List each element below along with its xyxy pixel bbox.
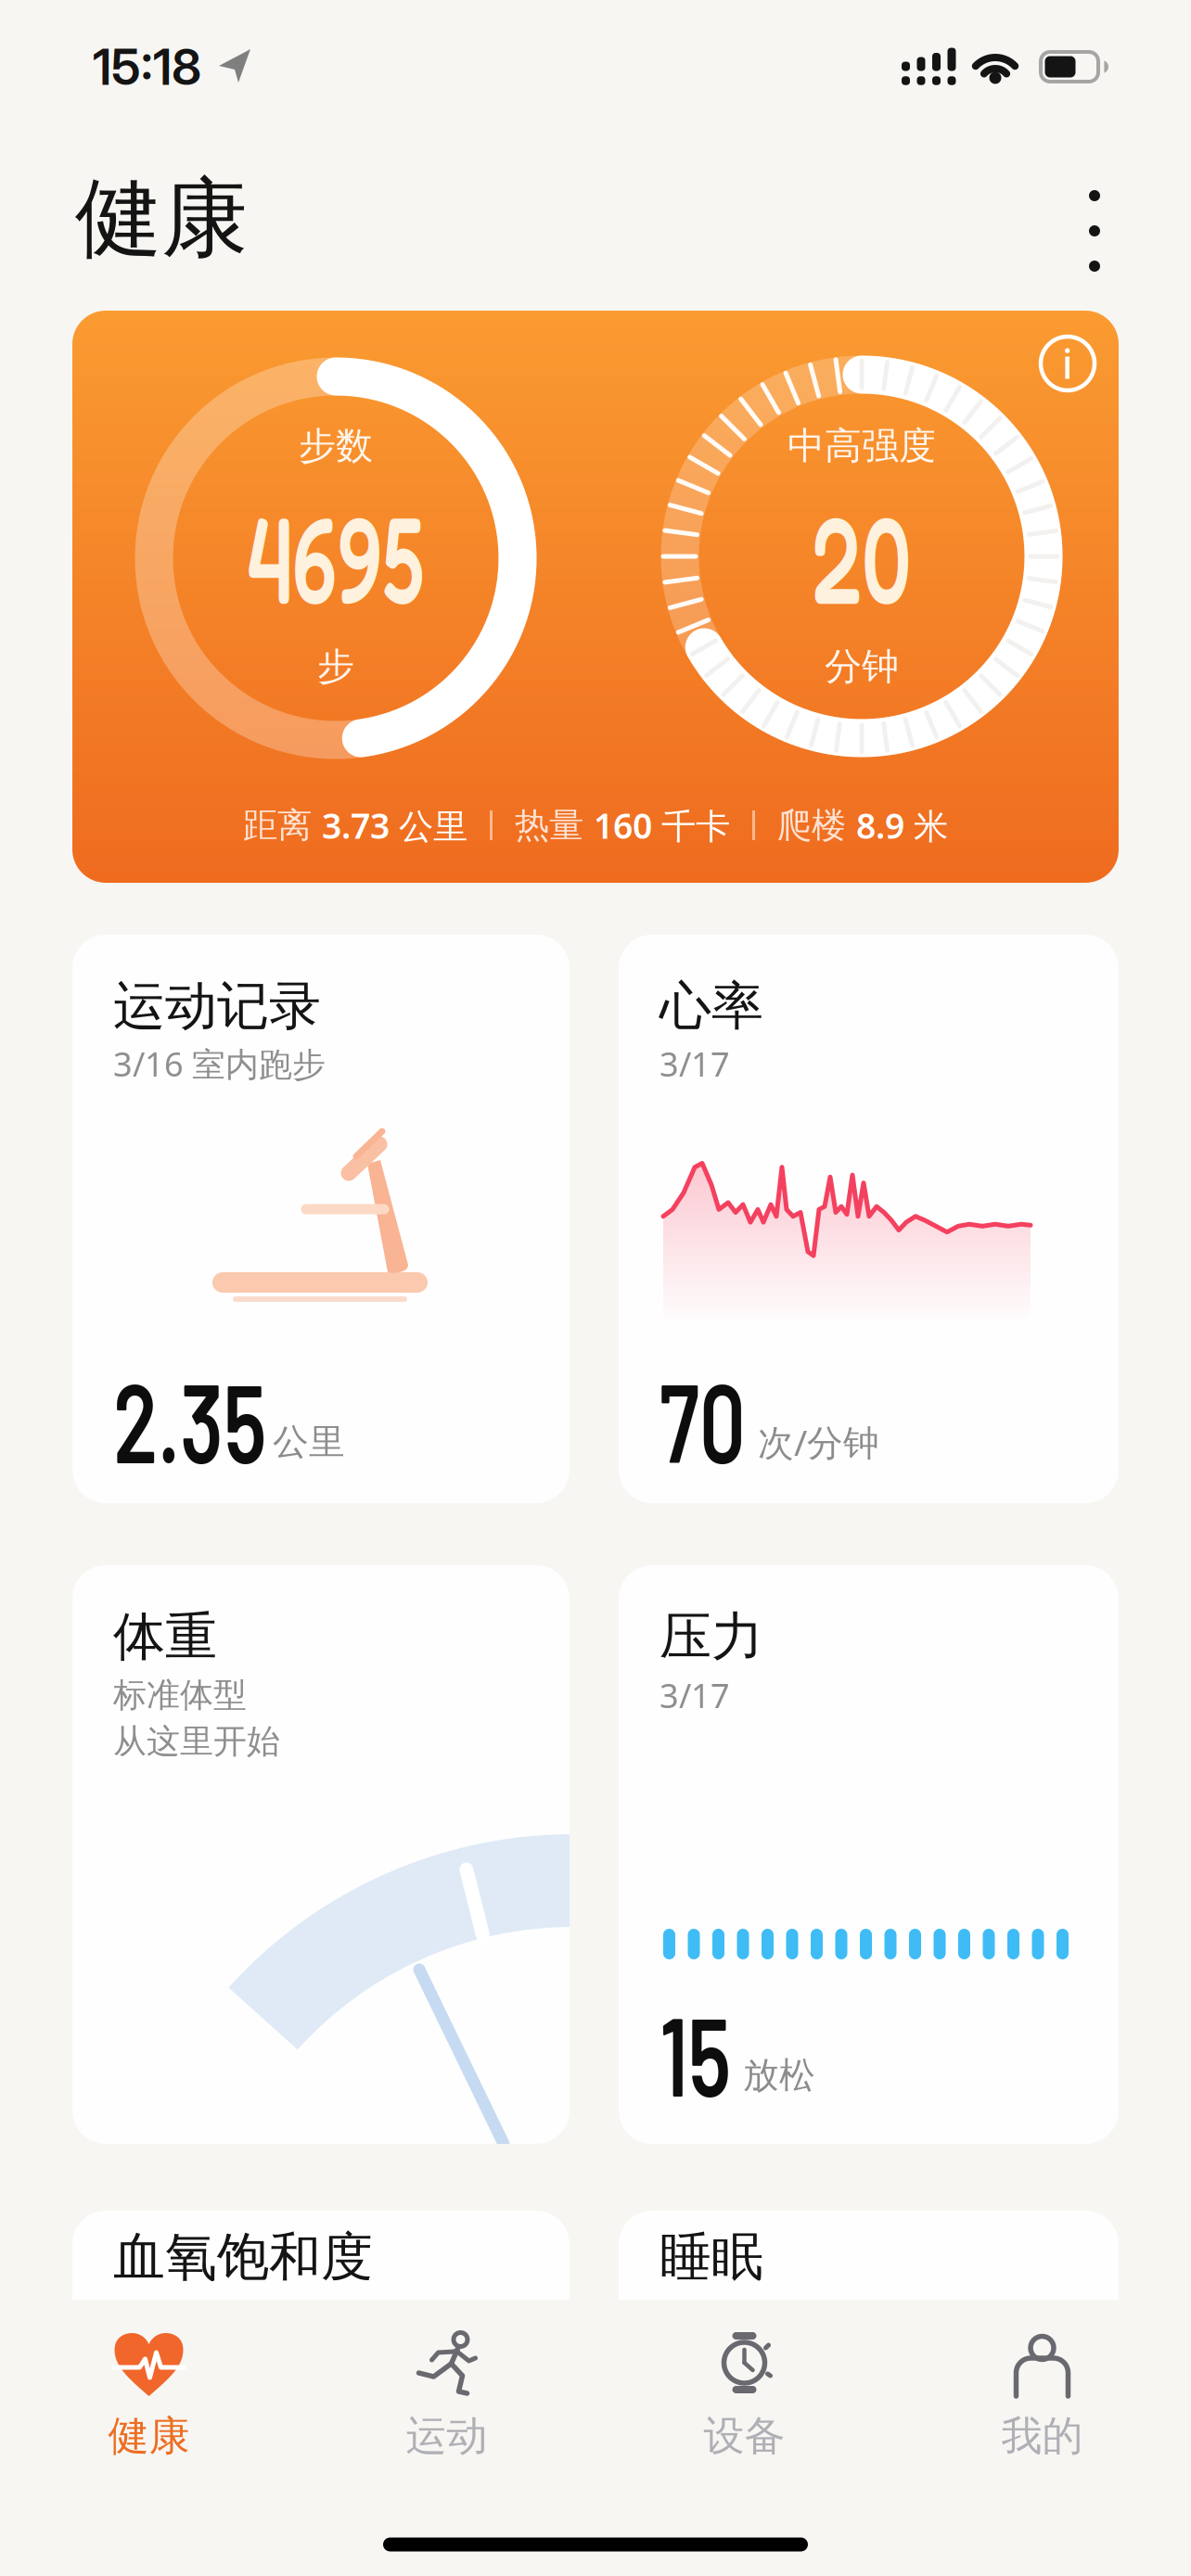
- staticText: 健康: [108, 2411, 190, 2461]
- button[interactable]: 健康: [28, 2300, 269, 2485]
- staticText: 健康: [75, 166, 248, 272]
- staticText: 15: [660, 1985, 758, 2119]
- button[interactable]: 睡眠: [619, 2211, 1119, 2576]
- staticText: 运动: [406, 2411, 487, 2461]
- button[interactable]: 步数: [72, 311, 1119, 883]
- staticText: 3/17: [660, 1673, 730, 1717]
- button[interactable]: 体重: [72, 1565, 570, 2144]
- staticText: 3/17: [660, 1041, 730, 1086]
- staticText: 70: [660, 1352, 777, 1486]
- staticText: 热量: [515, 804, 583, 847]
- staticText: 3/16 室内跑步: [113, 1041, 326, 1086]
- staticText: 步数: [299, 423, 373, 469]
- button[interactable]: 压力: [619, 1565, 1119, 2144]
- staticText: 次/分钟: [758, 1418, 879, 1466]
- staticText: 标准体型: [113, 1675, 247, 1716]
- staticText: 20: [791, 485, 933, 631]
- button[interactable]: 血氧饱和度: [72, 2211, 570, 2576]
- staticText: 放松: [743, 2053, 815, 2097]
- staticText: i: [1062, 337, 1073, 390]
- staticText: 压力: [660, 1605, 763, 1669]
- button[interactable]: 更多: [1057, 166, 1132, 296]
- button[interactable]: 活动数据说明: [1039, 335, 1096, 392]
- staticText: 心率: [660, 974, 763, 1038]
- staticText: 血氧饱和度: [113, 2225, 373, 2289]
- staticText: 爬楼: [777, 804, 846, 847]
- staticText: 运动记录: [113, 974, 321, 1038]
- button[interactable]: 我的: [922, 2300, 1163, 2485]
- staticText: 我的: [1001, 2411, 1083, 2461]
- staticText: 距离: [243, 804, 312, 847]
- staticText: 从这里开始: [113, 1721, 280, 1762]
- staticText: 公里: [273, 1420, 345, 1464]
- staticText: 2.35: [113, 1352, 324, 1486]
- staticText: 体重: [113, 1605, 217, 1669]
- staticText: 设备: [704, 2411, 785, 2461]
- button[interactable]: 心率: [619, 935, 1119, 1503]
- button[interactable]: 运动: [326, 2300, 567, 2485]
- staticText: 睡眠: [660, 2225, 763, 2289]
- staticText: 4695: [208, 485, 464, 631]
- staticText: 15:18: [93, 37, 201, 97]
- staticText: 3.73 公里: [322, 802, 467, 848]
- staticText: 160 千卡: [594, 802, 730, 848]
- staticText: 中高强度: [788, 423, 936, 469]
- button[interactable]: 设备: [624, 2300, 865, 2485]
- staticText: 分钟: [825, 644, 899, 689]
- button[interactable]: 运动记录: [72, 935, 570, 1503]
- staticText: 8.9 米: [856, 802, 948, 848]
- staticText: 步: [317, 644, 354, 689]
